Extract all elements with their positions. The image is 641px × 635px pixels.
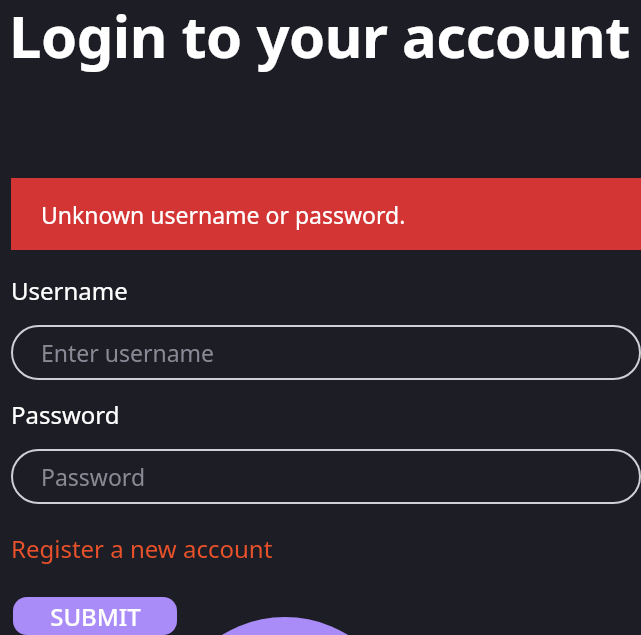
- staticText: Password: [11, 398, 120, 431]
- button[interactable]: SUBMIT: [13, 597, 177, 635]
- staticText: Password: [41, 461, 146, 492]
- staticText: Login to your account: [9, 0, 630, 74]
- button[interactable]: Password: [11, 449, 641, 504]
- staticText: Username: [11, 274, 128, 307]
- button[interactable]: Enter username: [11, 325, 641, 380]
- button[interactable]: Register a new account: [11, 532, 273, 565]
- staticText: SUBMIT: [50, 600, 141, 633]
- staticText: Register a new account: [11, 532, 273, 565]
- staticText: Unknown username or password.: [41, 199, 406, 230]
- staticText: Enter username: [41, 337, 215, 368]
